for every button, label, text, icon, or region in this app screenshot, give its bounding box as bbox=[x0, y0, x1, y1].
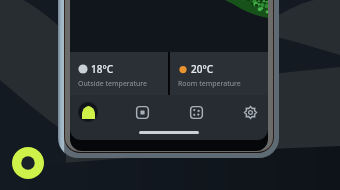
button[interactable]: 18°C bbox=[70, 52, 168, 95]
button[interactable]: 20°C bbox=[170, 52, 268, 95]
button[interactable]: Feed bbox=[130, 97, 154, 127]
button[interactable]: Settings bbox=[238, 97, 262, 127]
staticText: Room temperature bbox=[178, 79, 241, 89]
button[interactable]: Google Home bbox=[12, 147, 44, 179]
staticText: 18°C bbox=[91, 62, 114, 76]
button[interactable]: Home bbox=[76, 97, 100, 127]
button[interactable]: Automations bbox=[184, 97, 208, 127]
staticText: 20°C bbox=[191, 62, 214, 76]
staticText: Outside temperature bbox=[78, 79, 148, 89]
